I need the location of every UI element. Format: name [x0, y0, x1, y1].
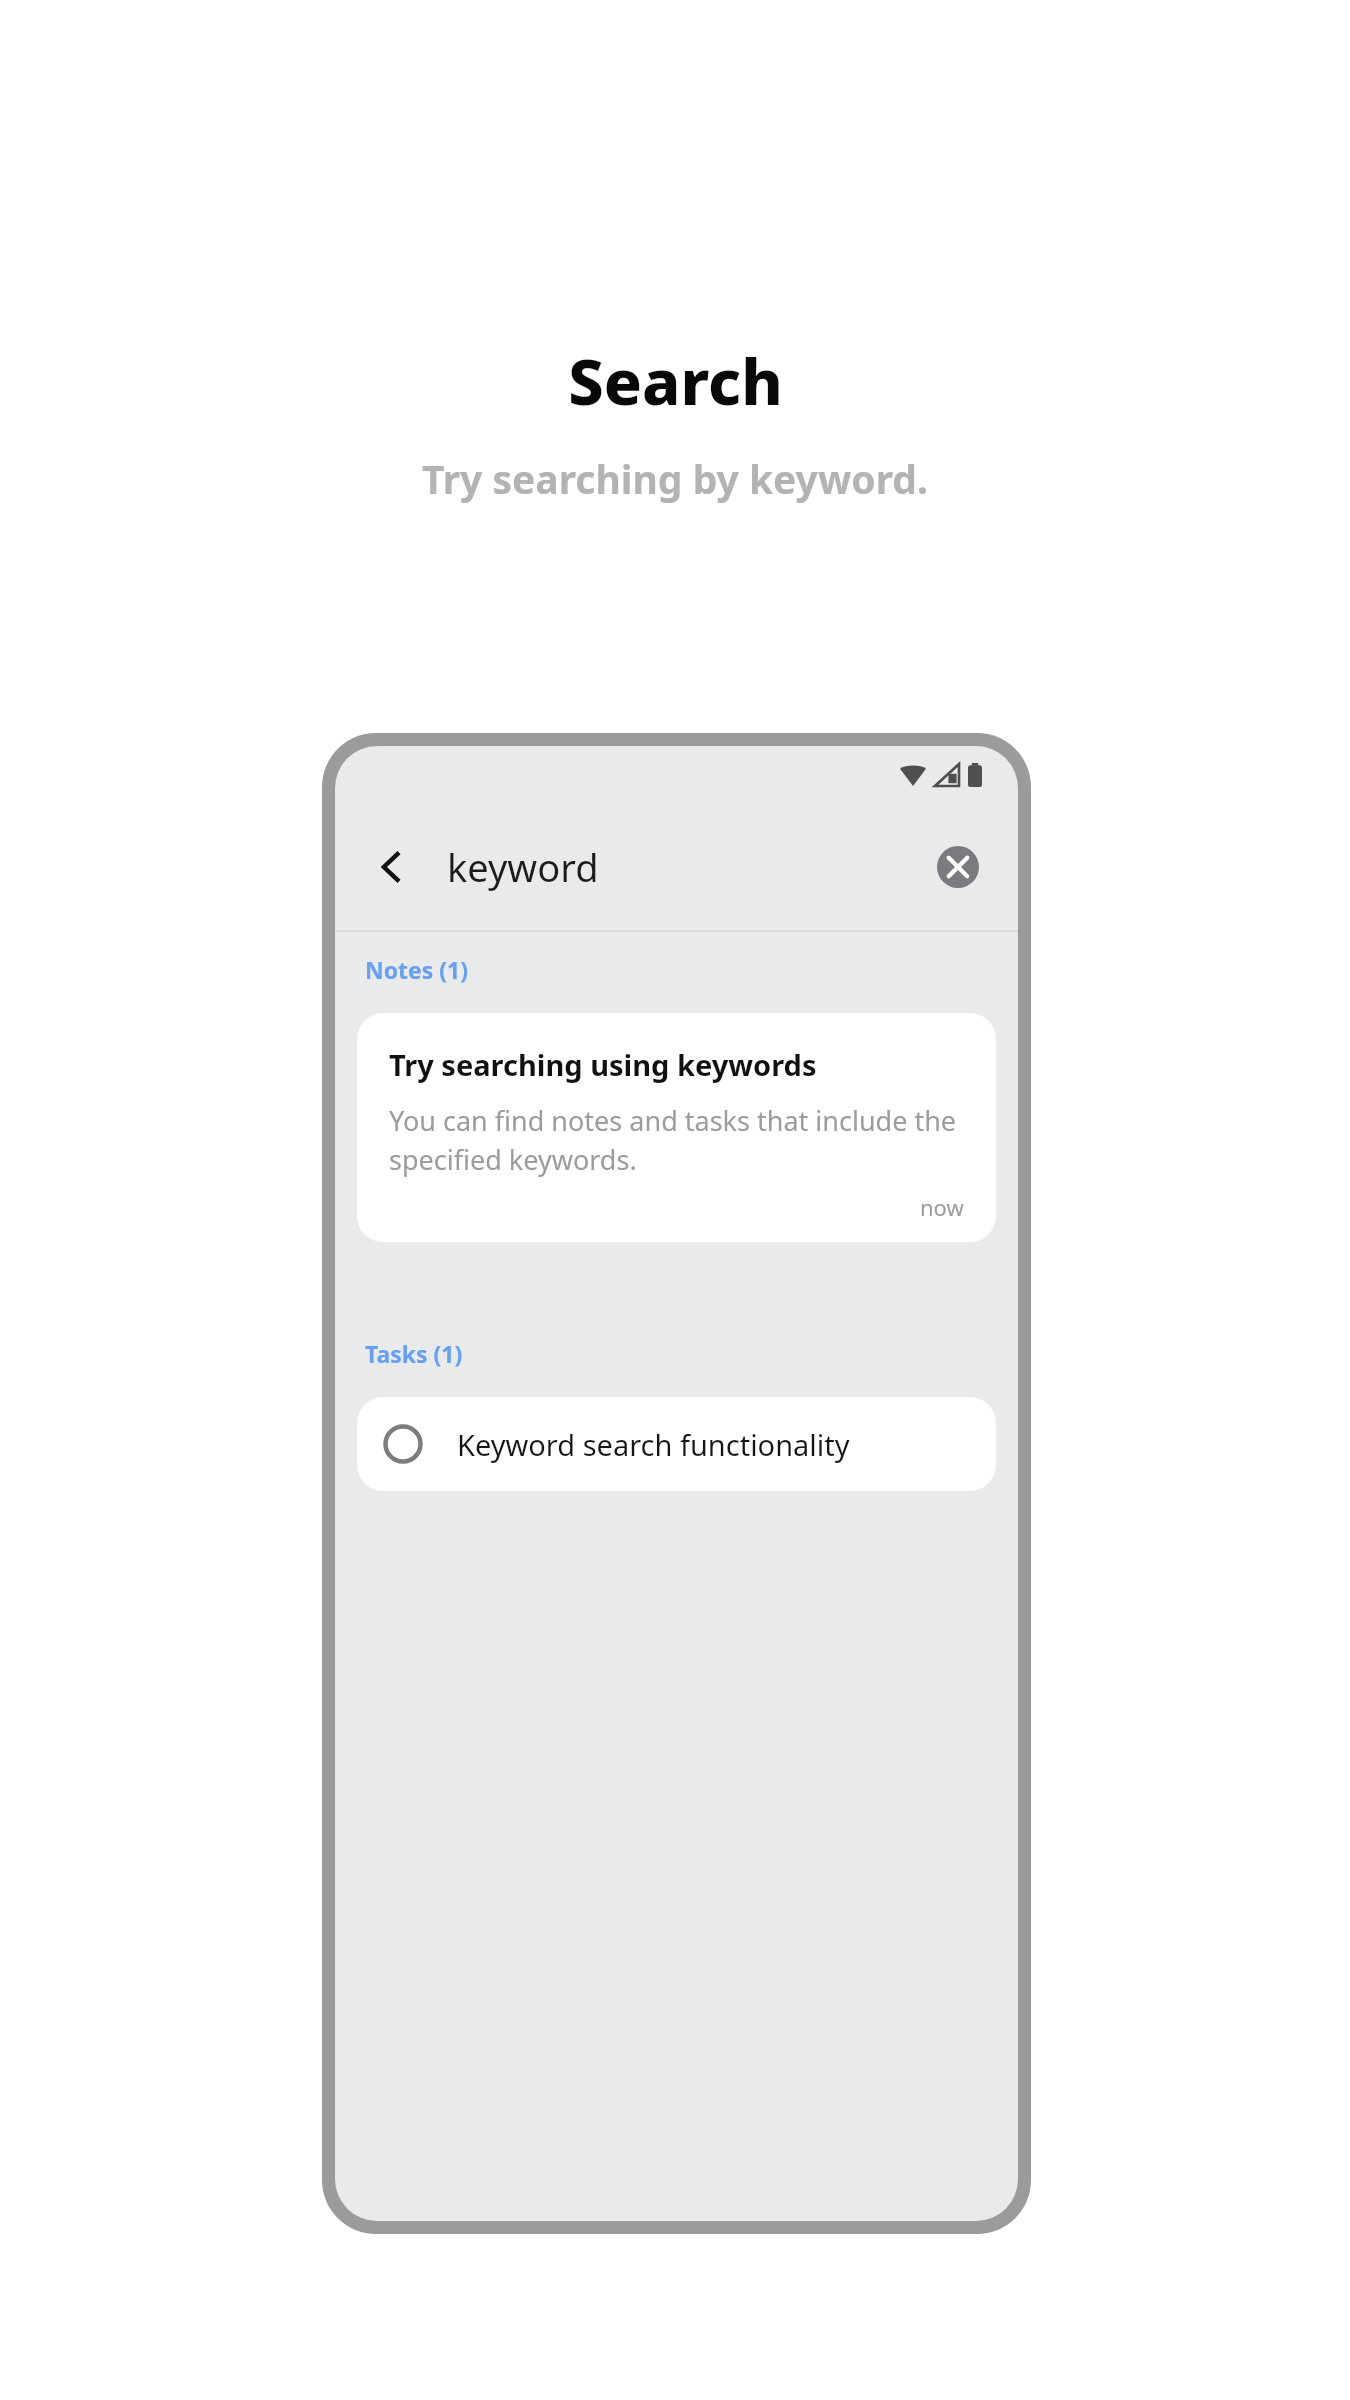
button[interactable]: Keyword search functionality: [357, 1397, 996, 1491]
staticText: Tasks (1): [365, 1338, 463, 1369]
button[interactable]: Back: [361, 836, 423, 898]
staticText: keyword: [447, 841, 599, 893]
staticText: Keyword search functionality: [457, 1425, 850, 1464]
staticText: now: [920, 1192, 964, 1222]
button[interactable]: Clear search: [928, 837, 988, 897]
staticText: Notes (1): [365, 954, 469, 985]
staticText: Try searching using keywords: [389, 1045, 817, 1084]
button[interactable]: Try searching using keywords: [357, 1013, 996, 1242]
staticText: Search: [568, 338, 783, 424]
staticText: You can find notes and tasks that includ…: [389, 1102, 964, 1178]
staticText: Try searching by keyword.: [422, 452, 928, 505]
